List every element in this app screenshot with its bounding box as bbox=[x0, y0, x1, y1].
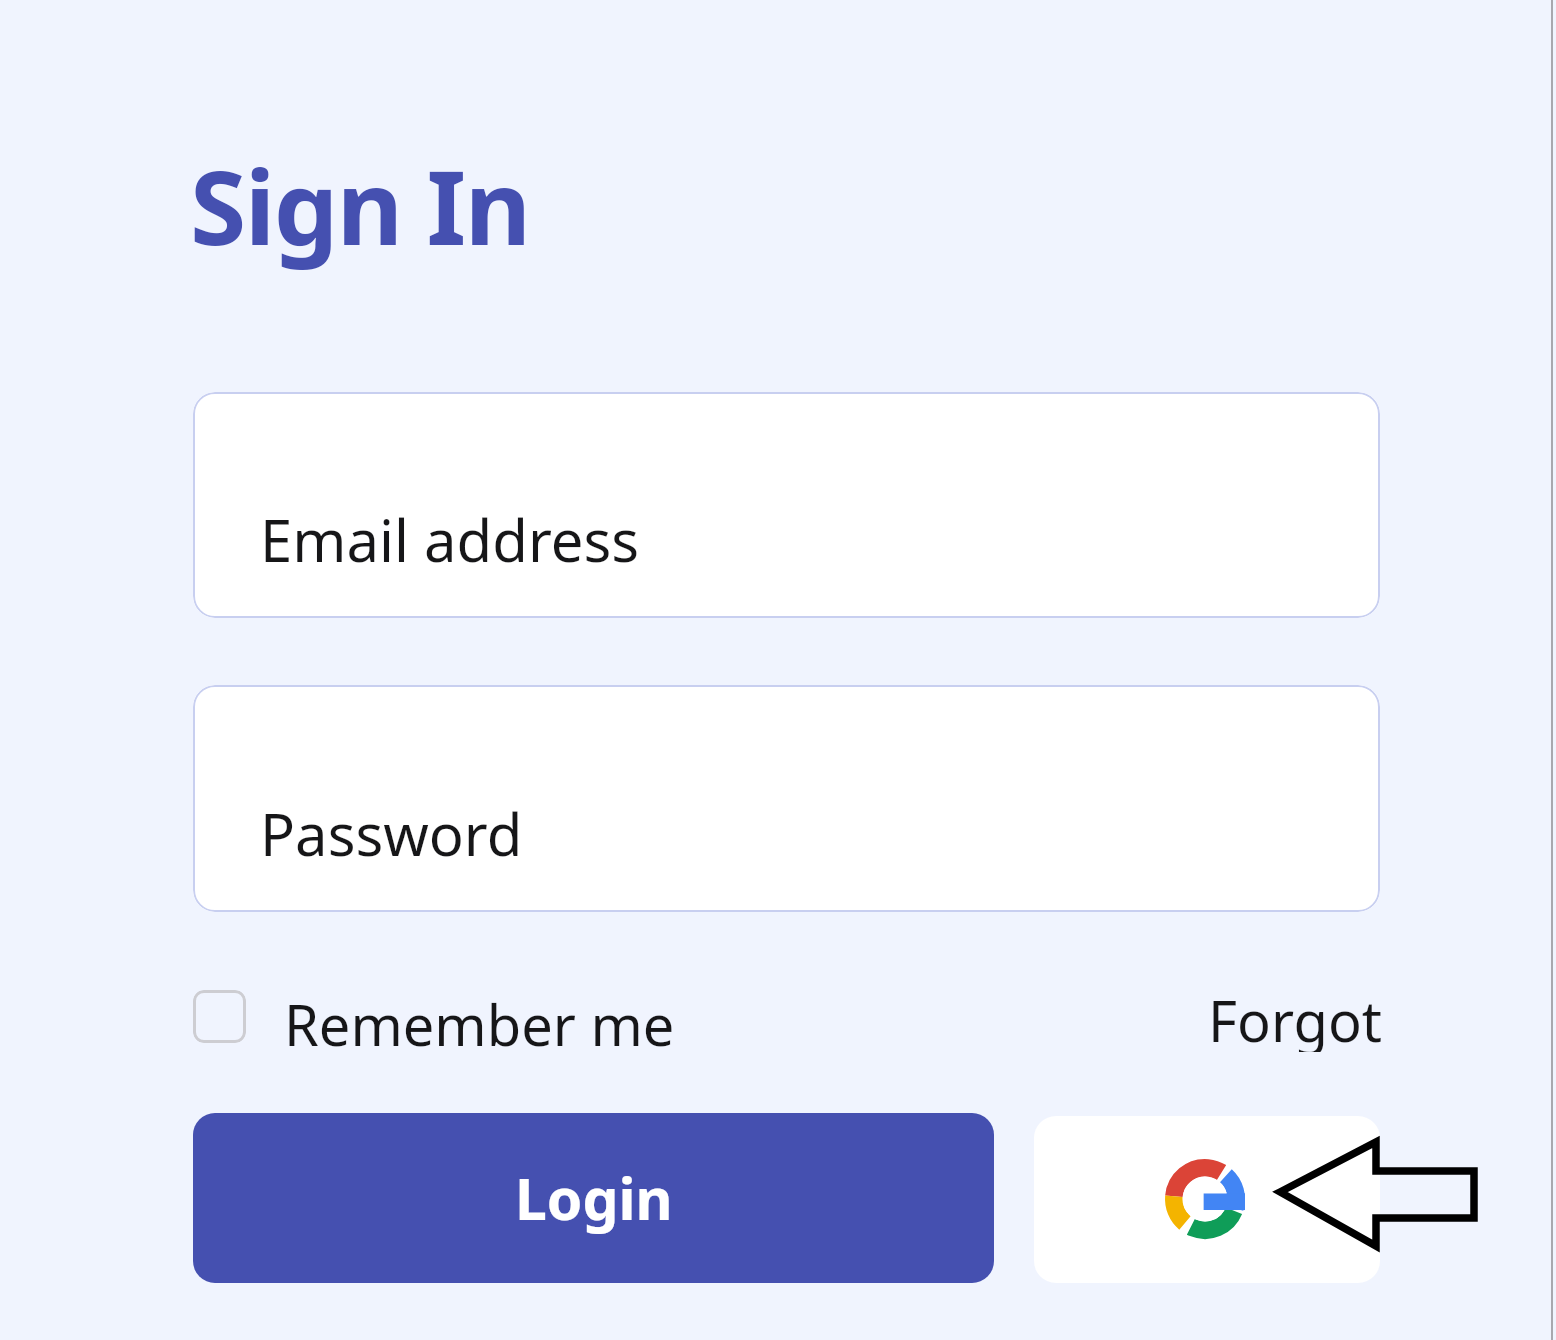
button[interactable]: Password bbox=[193, 685, 1380, 912]
staticText: Forgot password? bbox=[965, 982, 1382, 1052]
staticText: Password bbox=[260, 794, 523, 873]
staticText: Remember me bbox=[284, 986, 675, 1056]
button[interactable]: Login bbox=[193, 1113, 994, 1283]
button[interactable]: Sign in with Google bbox=[1034, 1116, 1380, 1283]
button[interactable]: Remember me bbox=[193, 982, 633, 1052]
staticText: Email address bbox=[260, 500, 639, 579]
other: Pointer arrow bbox=[1272, 1128, 1484, 1258]
button[interactable]: Email address bbox=[193, 392, 1380, 618]
staticText: Login bbox=[515, 1159, 673, 1237]
button[interactable]: Forgot password? bbox=[965, 982, 1382, 1052]
staticText: Sign In bbox=[190, 136, 530, 275]
